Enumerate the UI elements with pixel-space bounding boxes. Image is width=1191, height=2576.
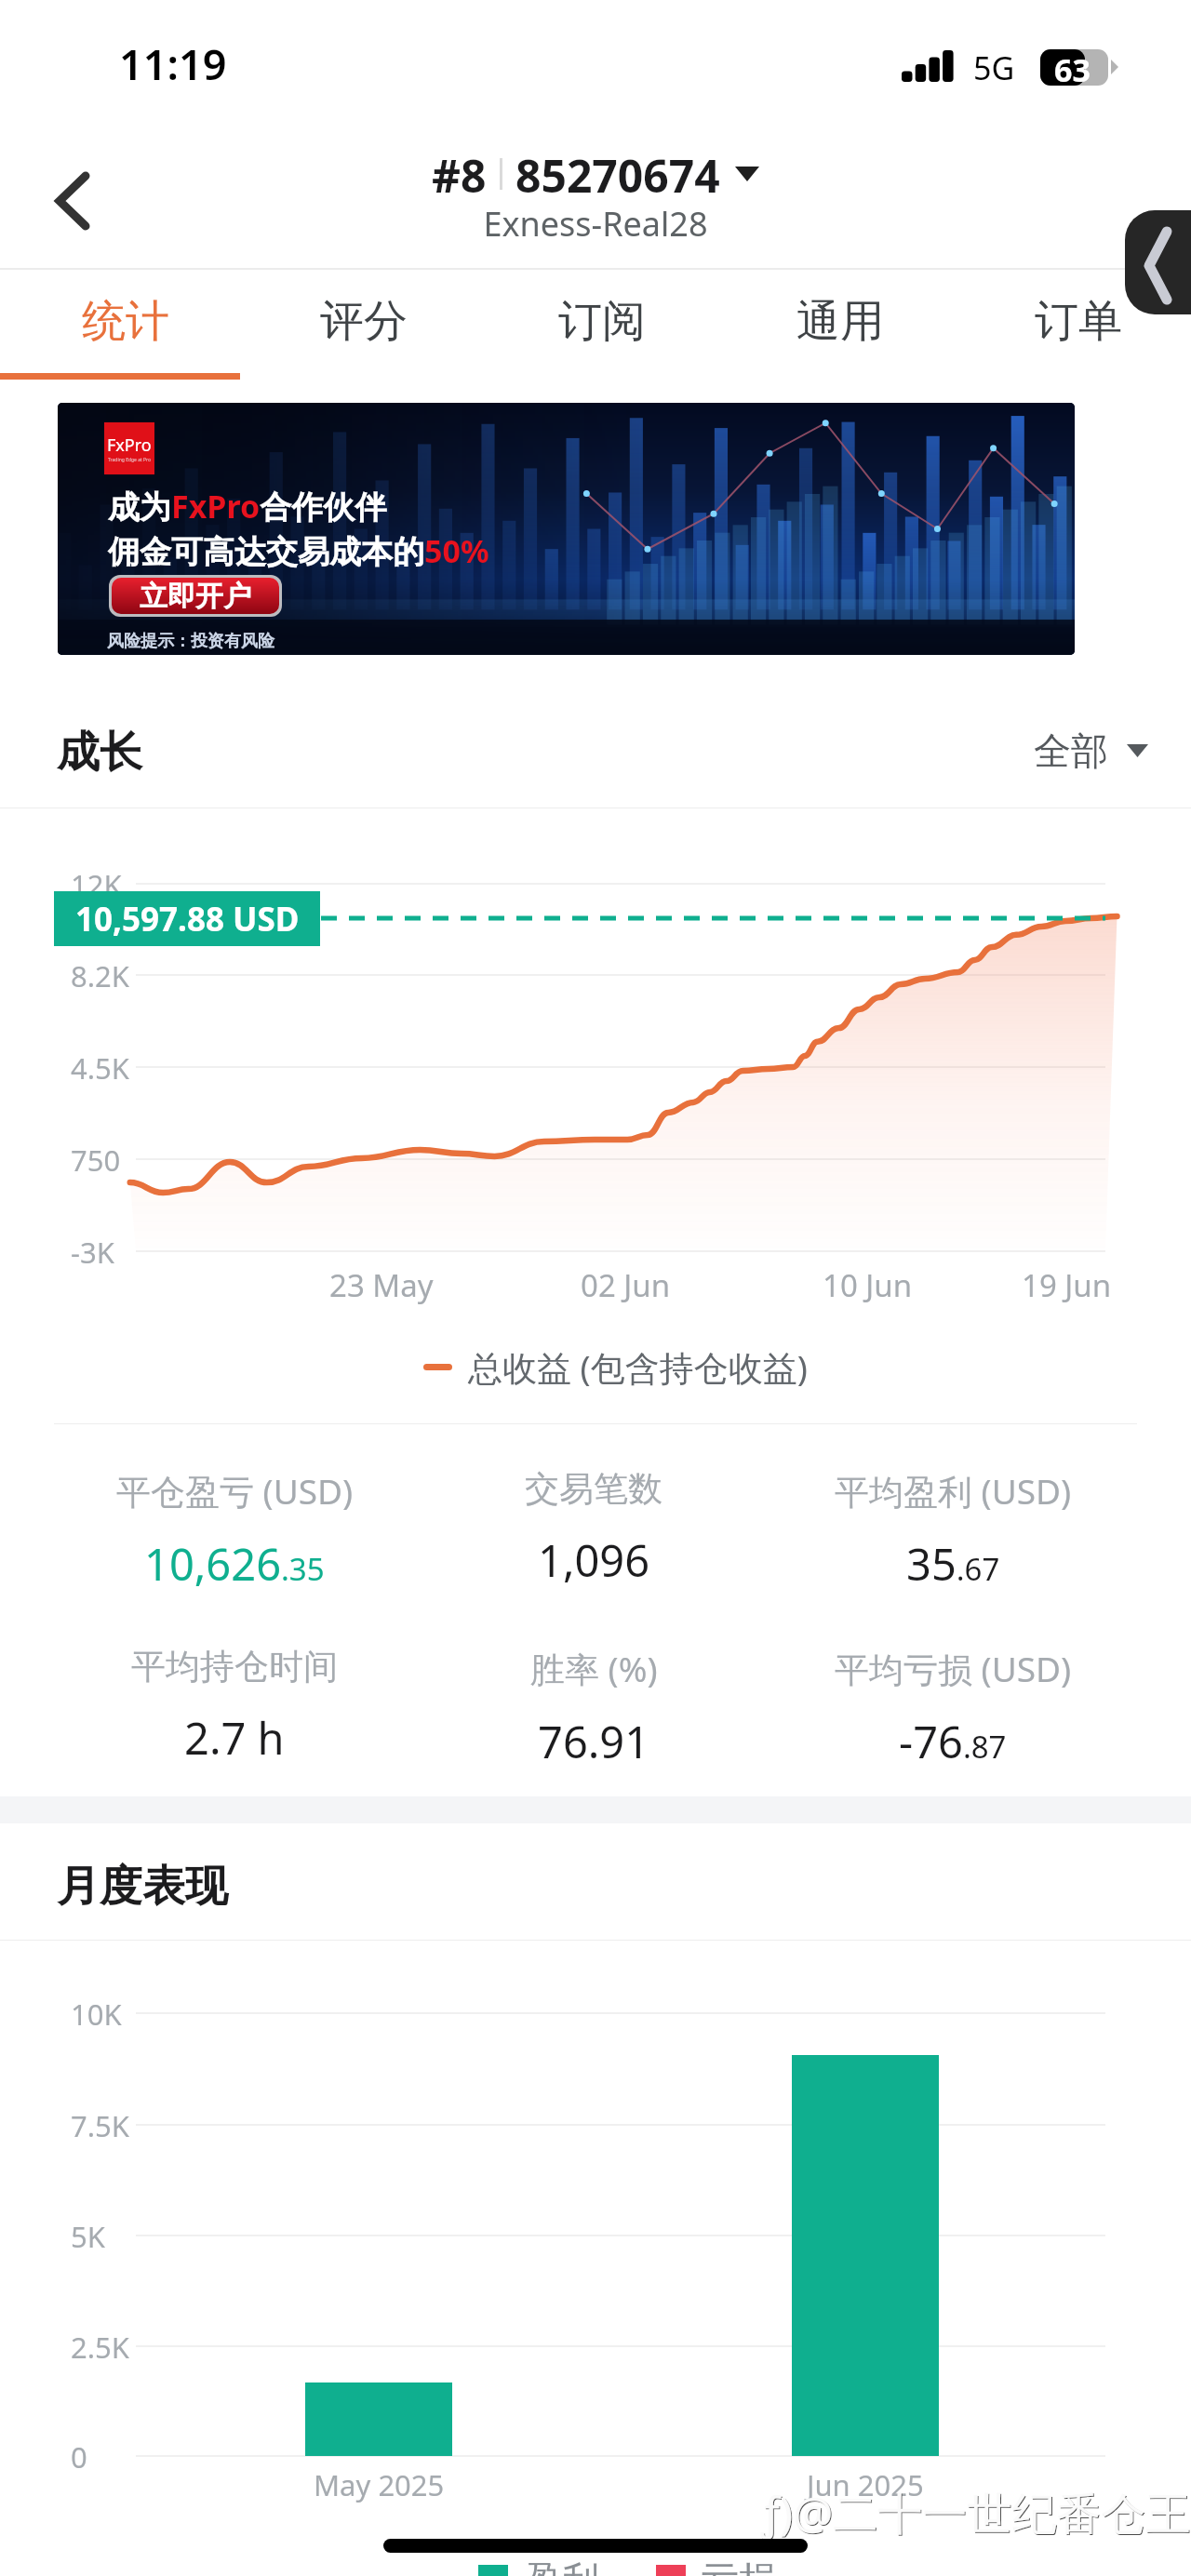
staticText: 23 May xyxy=(329,1264,434,1306)
staticText: 0 xyxy=(71,2437,87,2476)
staticText: 8.2K xyxy=(71,956,129,995)
button[interactable]: 立即开户 xyxy=(112,578,279,614)
staticText: -76.87 xyxy=(899,1712,1007,1771)
button[interactable]: 盈利 xyxy=(478,2556,776,2576)
button[interactable]: 平均持仓时间 xyxy=(55,1645,414,1768)
staticText: 10 Jun xyxy=(823,1264,913,1306)
staticText: 月度表现 xyxy=(57,1860,228,1914)
staticText: 平仓盈亏 (USD) xyxy=(116,1467,354,1515)
staticText: 19 Jun xyxy=(1022,1264,1112,1306)
button[interactable]: 平仓盈亏 (USD) xyxy=(55,1467,414,1594)
staticText: 12K xyxy=(71,865,122,904)
staticText: 10,597.88 USD xyxy=(75,897,300,941)
staticText: 平均亏损 (USD) xyxy=(835,1645,1072,1692)
button[interactable]: 总收益 (包含持仓收益) xyxy=(423,1343,808,1391)
staticText: 7.5K xyxy=(71,2106,129,2145)
staticText: 85270674 xyxy=(515,145,720,203)
staticText: 1,096 xyxy=(538,1530,650,1590)
button[interactable]: 平均亏损 (USD) xyxy=(773,1645,1132,1771)
staticText: 成为FxPro合作伙伴 xyxy=(108,485,387,527)
button[interactable]: 统计 xyxy=(7,268,245,374)
staticText: 订单 xyxy=(1035,294,1122,349)
button[interactable]: 通用 xyxy=(721,268,959,374)
staticText: 11:19 xyxy=(119,35,227,92)
staticText: 2.5K xyxy=(71,2328,129,2367)
staticText: 评分 xyxy=(320,294,408,349)
staticText: 63 xyxy=(1054,48,1091,85)
staticText: Exness-Real28 xyxy=(0,201,1191,247)
staticText: 10,626.35 xyxy=(144,1534,325,1594)
button[interactable]: 全部 xyxy=(1034,727,1148,774)
staticText: Jun 2025 xyxy=(807,2465,924,2504)
staticText: 胜率 (%) xyxy=(530,1645,658,1692)
staticText: 统计 xyxy=(82,294,169,349)
staticText: 76.91 xyxy=(538,1712,650,1771)
button[interactable]: Back xyxy=(32,152,112,235)
button[interactable]: 交易笔数 xyxy=(414,1467,773,1590)
button[interactable]: FxPro xyxy=(58,403,1075,655)
staticText: 盈利 xyxy=(525,2556,599,2576)
staticText: 订阅 xyxy=(558,294,646,349)
staticText: 亏损 xyxy=(702,2556,776,2576)
staticText: ƒ)@二十一世纪番仓王 xyxy=(761,2482,1191,2543)
staticText: 5K xyxy=(71,2217,105,2256)
staticText: 平均持仓时间 xyxy=(131,1645,338,1688)
staticText: 佣金可高达交易成本的50% xyxy=(108,529,489,572)
staticText: Trading Edge at Pro xyxy=(108,457,152,463)
staticText: 750 xyxy=(71,1141,121,1180)
staticText: 4.5K xyxy=(71,1048,129,1088)
staticText: ƒ)@二十一世纪番仓王 xyxy=(762,2483,1191,2544)
staticText: 全部 xyxy=(1034,727,1108,774)
staticText: May 2025 xyxy=(314,2465,445,2504)
staticText: 5G xyxy=(973,47,1015,89)
staticText: 通用 xyxy=(796,294,884,349)
staticText: 2.7 h xyxy=(184,1708,285,1768)
staticText: 交易笔数 xyxy=(525,1467,662,1511)
button[interactable]: 订阅 xyxy=(483,268,721,374)
staticText: 35.67 xyxy=(906,1534,1000,1594)
button[interactable]: 胜率 (%) xyxy=(414,1645,773,1771)
staticText: 10K xyxy=(71,1995,122,2034)
button[interactable]: 订单 xyxy=(959,268,1191,374)
staticText: 总收益 (包含持仓收益) xyxy=(468,1343,808,1391)
staticText: 立即开户 xyxy=(140,579,251,614)
button[interactable]: #8 xyxy=(409,145,782,203)
staticText: -3K xyxy=(71,1233,114,1272)
staticText: 02 Jun xyxy=(581,1264,671,1306)
staticText: #8 xyxy=(432,145,487,203)
staticText: 风险提示：投资有风险 xyxy=(107,631,274,652)
button[interactable]: 平均盈利 (USD) xyxy=(773,1467,1132,1594)
button[interactable]: 评分 xyxy=(245,268,483,374)
staticText: 成长 xyxy=(57,726,142,780)
button[interactable]: Back gesture handle xyxy=(1125,210,1191,314)
staticText: FxPro xyxy=(107,434,152,457)
staticText: 平均盈利 (USD) xyxy=(835,1467,1072,1515)
